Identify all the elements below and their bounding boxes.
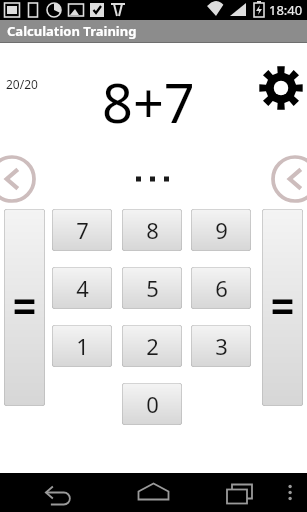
staticText: 20/20	[6, 76, 38, 92]
button[interactable]: 8	[122, 209, 182, 251]
button[interactable]: 3	[191, 325, 251, 367]
button[interactable]: 5	[122, 267, 182, 309]
staticText: 3	[215, 331, 228, 361]
staticText: 1	[76, 331, 89, 361]
button[interactable]: 9	[191, 209, 251, 251]
button[interactable]	[262, 209, 303, 406]
button[interactable]	[4, 209, 45, 406]
button[interactable]: 0	[122, 383, 182, 425]
button[interactable]: 7	[52, 209, 112, 251]
button[interactable]: Settings	[259, 66, 303, 110]
staticText: 7	[76, 215, 89, 245]
button[interactable]: Previous	[0, 155, 36, 203]
staticText: 18:40	[269, 1, 303, 19]
staticText: Calculation Training	[7, 22, 137, 40]
staticText: 8+7	[102, 65, 195, 139]
button[interactable]: 4	[52, 267, 112, 309]
staticText: 5	[146, 273, 159, 303]
button[interactable]: Next	[271, 155, 307, 203]
staticText: 8	[146, 215, 159, 245]
button[interactable]: 1	[52, 325, 112, 367]
staticText: 6	[215, 273, 228, 303]
staticText: 4	[76, 273, 89, 303]
staticText: 9	[215, 215, 228, 245]
staticText: 2	[146, 331, 159, 361]
button[interactable]: 6	[191, 267, 251, 309]
button[interactable]: 2	[122, 325, 182, 367]
staticText: 0	[146, 389, 159, 419]
